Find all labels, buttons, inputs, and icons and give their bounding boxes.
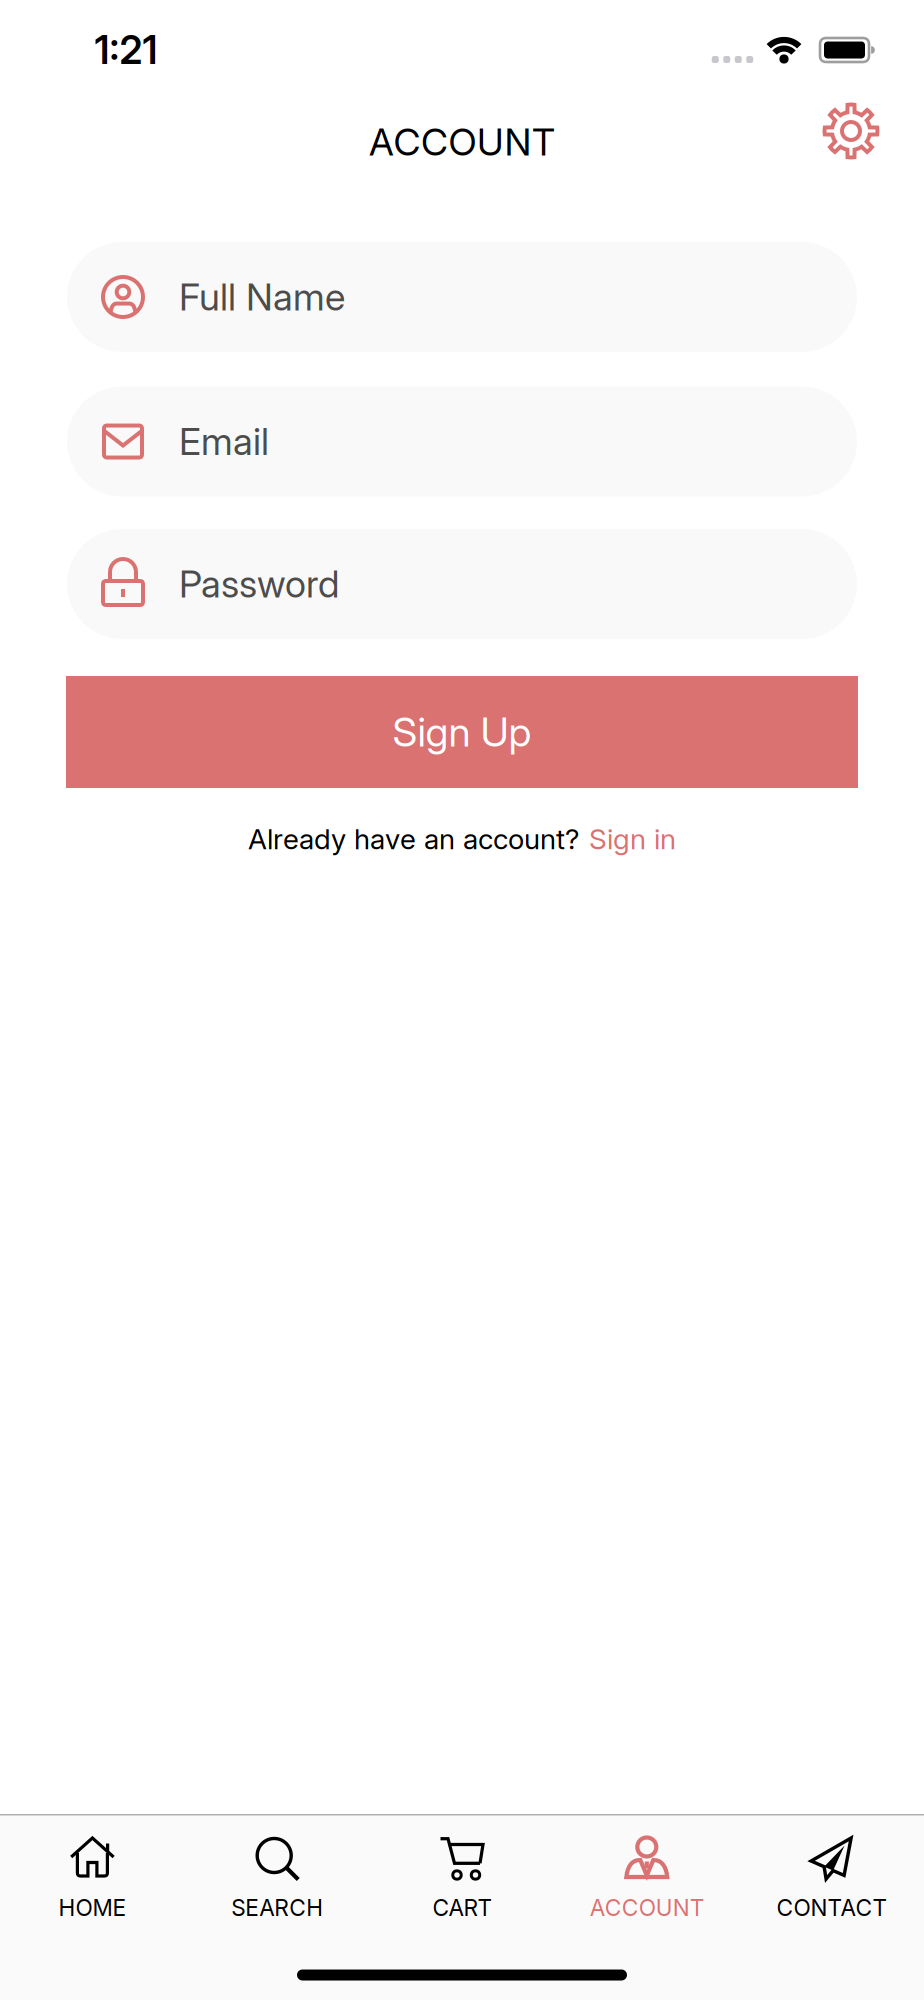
staticText: Email bbox=[179, 419, 269, 463]
staticText: Password bbox=[67, 571, 171, 597]
staticText: 1:21 bbox=[94, 27, 157, 73]
staticText: HOME bbox=[58, 1894, 126, 1921]
staticText: Already have an account? bbox=[248, 822, 579, 855]
button[interactable]: HOME bbox=[0, 1835, 185, 1921]
staticText: ACCOUNT bbox=[369, 120, 555, 164]
button[interactable]: Sign Up bbox=[66, 676, 858, 788]
staticText: CART bbox=[432, 1894, 491, 1921]
textField[interactable]: Password bbox=[67, 571, 857, 597]
staticText: Sign Up bbox=[392, 708, 531, 756]
staticText: Full Name bbox=[179, 275, 345, 319]
button[interactable]: CART bbox=[370, 1835, 554, 1921]
staticText: Sign in bbox=[589, 822, 676, 855]
button[interactable]: Sign in bbox=[589, 822, 676, 855]
textField[interactable]: Full Name bbox=[67, 284, 857, 310]
button[interactable]: CONTACT bbox=[739, 1835, 924, 1921]
button[interactable]: ACCOUNT bbox=[554, 1835, 739, 1921]
staticText: Full Name bbox=[67, 284, 171, 310]
staticText: Password bbox=[179, 562, 339, 606]
staticText: CONTACT bbox=[777, 1894, 887, 1921]
staticText: ACCOUNT bbox=[590, 1894, 704, 1921]
staticText: Email bbox=[67, 428, 124, 455]
staticText: SEARCH bbox=[231, 1894, 323, 1921]
button[interactable]: SEARCH bbox=[185, 1835, 370, 1921]
button[interactable]: Settings bbox=[825, 105, 877, 157]
textField[interactable]: Email bbox=[67, 428, 857, 455]
